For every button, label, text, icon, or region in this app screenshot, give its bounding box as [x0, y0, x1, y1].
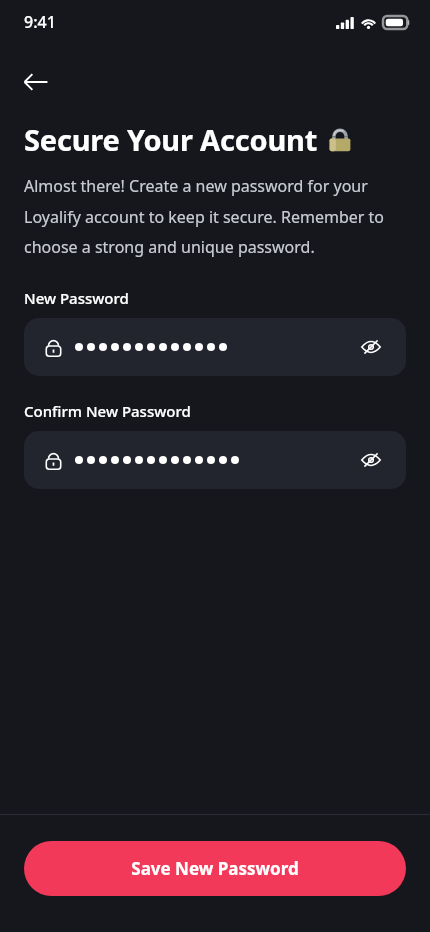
button[interactable]: Back — [12, 58, 60, 106]
staticText: 9:41 — [24, 11, 56, 33]
button[interactable]: Save New Password — [24, 841, 406, 896]
button[interactable]: Show password — [356, 332, 386, 362]
staticText: New Password — [24, 288, 129, 308]
button[interactable]: Show password — [356, 445, 386, 475]
button[interactable]: Show password — [24, 431, 406, 489]
staticText: Almost there! Create a new password for … — [24, 175, 404, 257]
staticText: Confirm New Password — [24, 401, 191, 421]
staticText: Secure Your Account — [24, 120, 318, 159]
staticText: Save New Password — [131, 857, 299, 880]
button[interactable]: Show password — [24, 318, 406, 376]
